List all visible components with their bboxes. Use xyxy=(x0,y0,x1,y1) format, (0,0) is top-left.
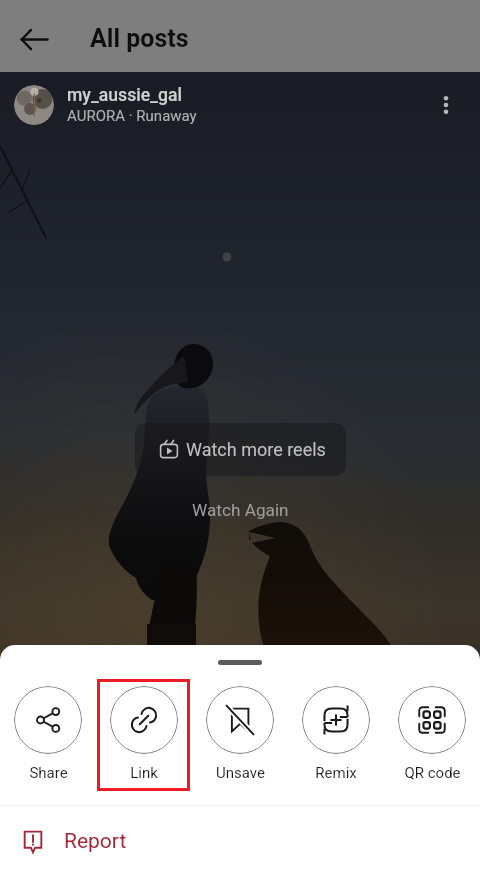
button[interactable]: Link xyxy=(97,679,190,791)
button[interactable]: Back xyxy=(6,8,62,64)
button[interactable] xyxy=(14,85,54,125)
staticText: Unsave xyxy=(216,764,265,782)
staticText: Report xyxy=(64,829,127,854)
button[interactable]: my_aussie_gal xyxy=(67,85,182,106)
button[interactable]: QR code xyxy=(385,679,478,791)
button[interactable]: More options xyxy=(426,85,466,125)
staticText: Link xyxy=(130,764,158,782)
button[interactable]: Share xyxy=(1,679,94,791)
staticText: Remix xyxy=(315,764,357,782)
button[interactable]: Remix xyxy=(289,679,382,791)
staticText: Watch more reels xyxy=(186,439,326,460)
staticText: All posts xyxy=(90,24,189,53)
button[interactable]: Watch more reels xyxy=(135,423,346,476)
staticText: QR code xyxy=(404,764,461,782)
button[interactable]: Unsave xyxy=(193,679,286,791)
staticText: Share xyxy=(29,764,68,782)
staticText: AURORA · Runaway xyxy=(67,107,197,125)
button[interactable]: Watch Again xyxy=(192,500,289,520)
button[interactable]: Report xyxy=(0,806,480,877)
